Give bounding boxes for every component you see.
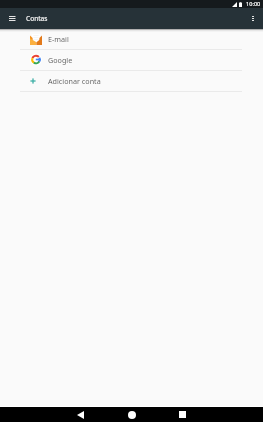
- staticText: Contas: [26, 14, 48, 23]
- button[interactable]: Recent apps: [157, 407, 208, 422]
- button[interactable]: E-mail: [0, 29, 263, 49]
- button[interactable]: Home: [106, 407, 157, 422]
- staticText: 10:00: [246, 0, 261, 8]
- button[interactable]: Back: [55, 407, 106, 422]
- staticText: Adicionar conta: [48, 76, 101, 86]
- staticText: Google: [48, 55, 73, 65]
- button[interactable]: More options: [242, 8, 263, 29]
- staticText: E-mail: [48, 34, 69, 44]
- button[interactable]: Adicionar conta: [0, 71, 263, 91]
- button[interactable]: Menu: [0, 8, 21, 29]
- button[interactable]: Google: [0, 50, 263, 70]
